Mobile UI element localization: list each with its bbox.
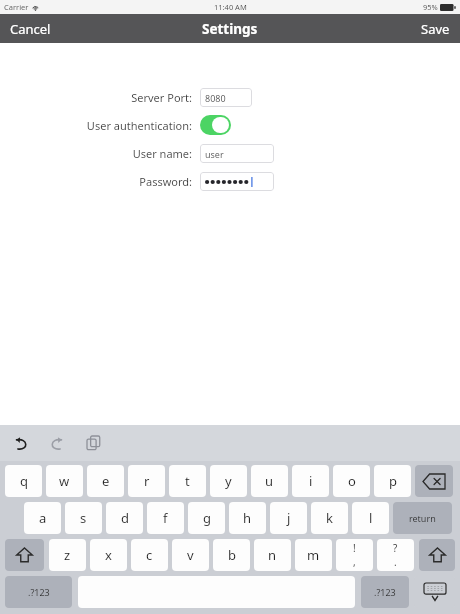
staticText: user — [205, 148, 224, 160]
button[interactable]: f — [147, 502, 184, 534]
button[interactable]: c — [131, 539, 168, 571]
button[interactable]: z — [49, 539, 86, 571]
button[interactable]: q — [5, 465, 42, 497]
staticText: w — [59, 472, 70, 490]
button[interactable]: Shift — [5, 539, 44, 571]
button[interactable]: x — [90, 539, 127, 571]
staticText: u — [265, 472, 274, 490]
staticText: z — [64, 546, 71, 564]
staticText: ? — [393, 541, 398, 555]
button[interactable]: t — [169, 465, 206, 497]
button[interactable]: Cancel — [0, 14, 61, 43]
button[interactable]: .?123 — [5, 576, 72, 608]
staticText: h — [243, 509, 252, 527]
button[interactable]: Hide keyboard — [414, 576, 455, 608]
staticText: a — [39, 509, 47, 527]
button[interactable]: r — [128, 465, 165, 497]
button[interactable]: 8080 — [200, 88, 252, 107]
staticText: d — [121, 509, 129, 527]
staticText: t — [185, 472, 190, 490]
staticText: 11:40 AM — [214, 2, 247, 12]
button[interactable]: Shift — [419, 539, 455, 571]
staticText: Settings — [202, 20, 258, 38]
button[interactable]: .?123 — [361, 576, 409, 608]
staticText: User authentication: — [86, 118, 192, 133]
button[interactable]: o — [333, 465, 370, 497]
staticText: return — [409, 512, 436, 524]
staticText: Carrier — [4, 2, 29, 12]
button[interactable]: i — [292, 465, 329, 497]
button[interactable]: return — [393, 502, 452, 534]
button[interactable]: p — [374, 465, 411, 497]
button[interactable]: u — [251, 465, 288, 497]
button[interactable]: a — [24, 502, 61, 534]
staticText: .?123 — [28, 586, 50, 598]
staticText: ! — [353, 541, 356, 555]
staticText: f — [163, 509, 168, 527]
staticText: m — [307, 546, 320, 564]
staticText: k — [326, 509, 333, 527]
button[interactable]: h — [229, 502, 266, 534]
button[interactable]: Redo — [46, 432, 68, 454]
button[interactable]: d — [106, 502, 143, 534]
button[interactable]: s — [65, 502, 102, 534]
staticText: , — [353, 555, 356, 569]
button[interactable]: User authentication toggle, on — [200, 115, 231, 135]
button[interactable]: e — [87, 465, 124, 497]
staticText: x — [105, 546, 112, 564]
button[interactable]: g — [188, 502, 225, 534]
staticText: . — [394, 555, 397, 569]
button[interactable]: ! — [336, 539, 373, 571]
button[interactable]: n — [254, 539, 291, 571]
button[interactable]: Backspace — [415, 465, 453, 497]
button[interactable]: b — [213, 539, 250, 571]
staticText: 95% — [423, 2, 438, 12]
staticText: r — [144, 472, 150, 490]
staticText: v — [187, 546, 194, 564]
staticText: Save — [421, 20, 450, 38]
button[interactable]: y — [210, 465, 247, 497]
staticText: y — [225, 472, 232, 490]
staticText: i — [309, 472, 313, 490]
button[interactable]: user — [200, 144, 274, 163]
staticText: s — [80, 509, 87, 527]
staticText: User name: — [132, 146, 192, 161]
staticText: n — [268, 546, 277, 564]
staticText: j — [287, 509, 291, 527]
button[interactable]: v — [172, 539, 209, 571]
button[interactable]: w — [46, 465, 83, 497]
staticText: 8080 — [205, 92, 226, 104]
staticText: p — [389, 472, 397, 490]
button[interactable]: Save — [411, 14, 460, 43]
button[interactable]: ? — [377, 539, 414, 571]
button[interactable]: m — [295, 539, 332, 571]
staticText: Password: — [139, 174, 192, 189]
staticText: l — [369, 509, 373, 527]
staticText: Server Port: — [131, 90, 192, 105]
button[interactable]: Undo — [10, 432, 32, 454]
staticText: o — [348, 472, 356, 490]
staticText: .?123 — [374, 586, 396, 598]
staticText: Cancel — [10, 20, 51, 38]
button[interactable]: k — [311, 502, 348, 534]
staticText: e — [102, 472, 110, 490]
staticText: b — [228, 546, 236, 564]
button[interactable]: j — [270, 502, 307, 534]
staticText: q — [20, 472, 28, 490]
button[interactable]: l — [352, 502, 389, 534]
button[interactable] — [200, 172, 274, 191]
staticText: g — [203, 509, 211, 527]
staticText: c — [146, 546, 153, 564]
button[interactable]: Paste — [82, 432, 104, 454]
